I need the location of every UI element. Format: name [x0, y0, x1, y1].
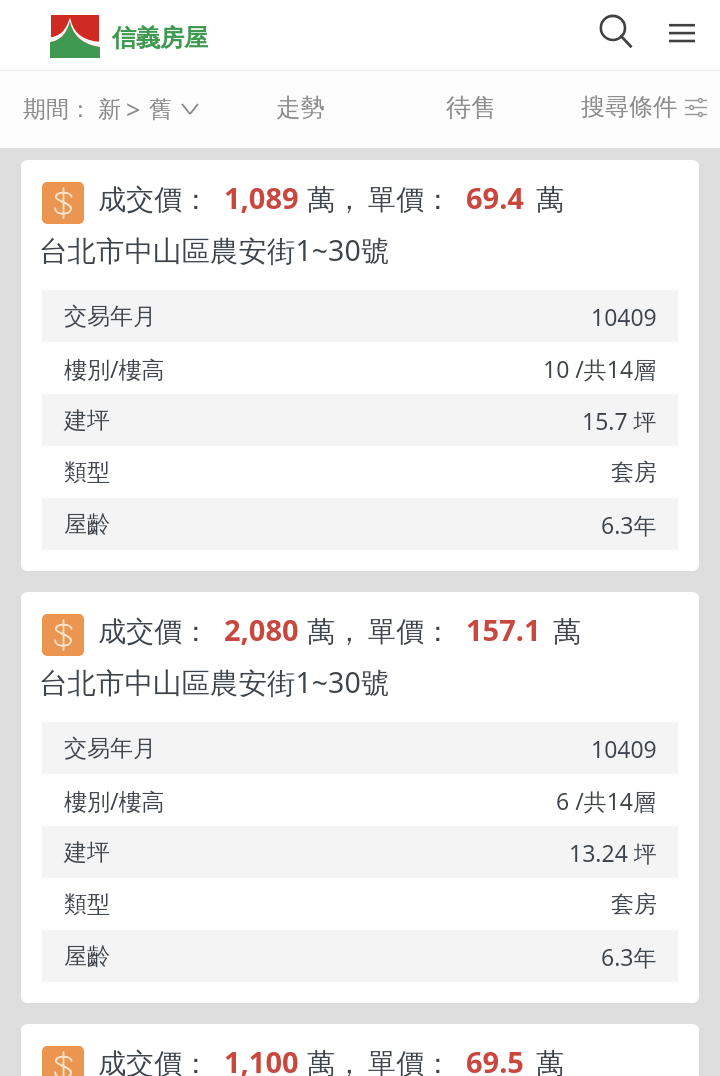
staticText: 6.3年	[601, 509, 657, 540]
staticText: 屋齡	[64, 510, 110, 539]
staticText: 6 /共14層	[556, 785, 657, 816]
staticText: 13.24 坪	[569, 837, 657, 868]
staticText: 搜尋條件	[581, 92, 677, 122]
staticText: 屋齡	[64, 942, 110, 971]
staticText: 單價：	[368, 1046, 452, 1076]
staticText: 建坪	[64, 838, 110, 867]
staticText: 套房	[611, 890, 657, 919]
staticText: 待售	[446, 92, 496, 123]
staticText: 交易年月	[64, 734, 156, 763]
staticText: 6.3年	[601, 941, 657, 972]
button[interactable]: 成交價：	[21, 160, 699, 571]
button[interactable]: 期間：	[23, 92, 198, 126]
staticText: 10 /共14層	[543, 353, 657, 384]
staticText: 157.1	[466, 610, 541, 649]
staticText: 套房	[611, 458, 657, 487]
staticText: >	[126, 92, 141, 126]
staticText: 成交價：	[98, 614, 210, 649]
button[interactable]: 搜尋條件	[581, 92, 707, 122]
staticText: 15.7 坪	[582, 405, 657, 436]
staticText: 萬	[536, 182, 564, 217]
staticText: 新	[98, 95, 121, 124]
staticText: 建坪	[64, 406, 110, 435]
staticText: 1,089	[224, 178, 299, 217]
staticText: 1,100	[224, 1042, 299, 1076]
staticText: 成交價：	[98, 182, 210, 217]
button[interactable]: 成交價：	[21, 1024, 699, 1076]
staticText: 10409	[591, 733, 657, 764]
staticText: 萬	[553, 614, 581, 649]
staticText: 期間：	[23, 95, 92, 124]
staticText: 萬	[536, 1046, 564, 1076]
button[interactable]: 待售	[426, 77, 516, 139]
staticText: 2,080	[224, 610, 299, 649]
staticText: 走勢	[276, 92, 325, 123]
staticText: 單價：	[368, 614, 452, 649]
staticText: 台北市中山區農安街1~30號	[39, 231, 390, 270]
staticText: 萬，	[307, 182, 363, 217]
button[interactable]: Search	[593, 8, 641, 56]
staticText: 類型	[64, 458, 110, 487]
staticText: 單價：	[368, 182, 452, 217]
staticText: 10409	[591, 301, 657, 332]
staticText: 交易年月	[64, 302, 156, 331]
staticText: 成交價：	[98, 1046, 210, 1076]
staticText: 信義房屋	[112, 23, 208, 53]
staticText: 萬，	[307, 614, 363, 649]
button[interactable]: 成交價：	[21, 592, 699, 1003]
staticText: 樓別/樓高	[64, 353, 165, 384]
staticText: 樓別/樓高	[64, 785, 165, 816]
button[interactable]: 走勢	[256, 77, 345, 139]
staticText: 類型	[64, 890, 110, 919]
button[interactable]: Menu	[658, 9, 706, 57]
staticText: 舊	[149, 95, 172, 124]
staticText: 台北市中山區農安街1~30號	[39, 663, 390, 702]
staticText: 萬，	[307, 1046, 363, 1076]
staticText: 69.4	[466, 178, 524, 217]
staticText: 69.5	[466, 1042, 524, 1076]
